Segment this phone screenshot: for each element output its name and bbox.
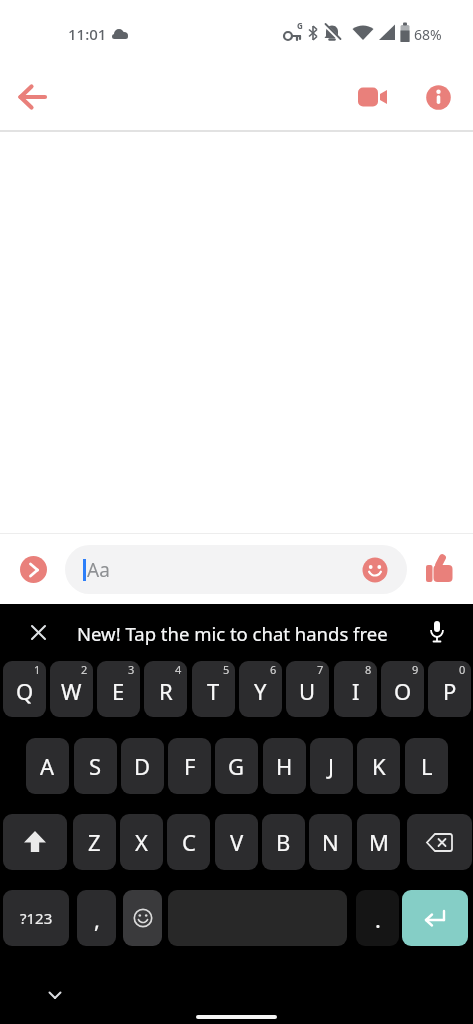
button[interactable]: H — [263, 738, 306, 794]
button[interactable]: V — [215, 814, 258, 870]
staticText: , — [94, 904, 100, 934]
staticText: Y — [254, 676, 267, 706]
button[interactable] — [20, 614, 56, 650]
staticText: . — [375, 904, 381, 934]
staticText: 0 — [459, 662, 466, 677]
staticText: New! Tap the mic to chat hands free — [77, 621, 388, 646]
staticText: 5 — [223, 662, 230, 677]
staticText: 1 — [34, 662, 41, 677]
staticText: Q — [16, 676, 34, 706]
staticText: O — [394, 676, 412, 706]
button[interactable]: Y — [239, 661, 282, 717]
button[interactable]: G — [215, 738, 258, 794]
staticText: 7 — [317, 662, 324, 677]
button[interactable]: I — [334, 661, 377, 717]
button[interactable]: U — [286, 661, 329, 717]
staticText: P — [443, 676, 457, 706]
staticText: 2 — [81, 662, 88, 677]
staticText: X — [135, 827, 148, 857]
staticText: 68% — [414, 25, 442, 44]
staticText: N — [322, 827, 339, 857]
button[interactable] — [38, 978, 72, 1012]
button[interactable]: . — [356, 890, 399, 946]
staticText: U — [299, 676, 316, 706]
button[interactable]: E — [97, 661, 140, 717]
button[interactable]: , — [77, 890, 116, 946]
staticText: 8 — [365, 662, 372, 677]
button[interactable] — [419, 614, 455, 650]
button[interactable]: D — [121, 738, 164, 794]
staticText: 3 — [128, 662, 135, 677]
button[interactable] — [349, 73, 397, 121]
button[interactable] — [3, 814, 67, 870]
button[interactable]: P — [428, 661, 471, 717]
button[interactable]: S — [74, 738, 117, 794]
button[interactable] — [20, 556, 47, 583]
staticText: C — [182, 827, 196, 857]
button[interactable]: T — [192, 661, 235, 717]
staticText: G — [228, 751, 245, 781]
staticText: Z — [88, 827, 101, 857]
staticText: J — [328, 751, 335, 781]
button[interactable] — [424, 551, 457, 584]
button[interactable]: O — [381, 661, 424, 717]
staticText: Aa — [87, 557, 110, 583]
button[interactable] — [9, 73, 57, 121]
staticText: F — [184, 751, 196, 781]
staticText: I — [352, 676, 360, 706]
button[interactable]: C — [167, 814, 210, 870]
staticText: T — [207, 676, 220, 706]
staticText: E — [112, 676, 125, 706]
button[interactable] — [362, 557, 388, 583]
button[interactable]: N — [309, 814, 352, 870]
button[interactable]: ?123 — [3, 890, 69, 946]
button[interactable]: R — [144, 661, 187, 717]
button[interactable]: K — [357, 738, 400, 794]
button[interactable]: Q — [3, 661, 46, 717]
staticText: W — [61, 676, 82, 706]
button[interactable]: B — [262, 814, 305, 870]
staticText: K — [372, 751, 386, 781]
staticText: ?123 — [20, 908, 53, 928]
staticText: M — [369, 827, 389, 857]
staticText: H — [276, 751, 293, 781]
staticText: S — [89, 751, 102, 781]
button[interactable]: W — [50, 661, 93, 717]
button[interactable]: J — [310, 738, 353, 794]
button[interactable]: Z — [73, 814, 116, 870]
button[interactable] — [402, 890, 468, 946]
staticText: 11:01 — [68, 24, 107, 44]
button[interactable]: L — [405, 738, 448, 794]
button[interactable]: A — [26, 738, 69, 794]
staticText: A — [40, 751, 55, 781]
staticText: L — [421, 751, 433, 781]
button[interactable] — [407, 814, 472, 870]
button[interactable] — [123, 890, 162, 946]
staticText: B — [276, 827, 291, 857]
button[interactable]: F — [168, 738, 211, 794]
staticText: 6 — [270, 662, 277, 677]
staticText: V — [230, 827, 244, 857]
button[interactable] — [414, 73, 462, 121]
button[interactable] — [168, 890, 347, 946]
button[interactable]: X — [120, 814, 163, 870]
staticText: R — [159, 676, 173, 706]
staticText: G — [297, 20, 303, 31]
staticText: 9 — [412, 662, 419, 677]
button[interactable]: Aa — [65, 545, 407, 594]
button[interactable]: M — [357, 814, 400, 870]
staticText: 4 — [175, 662, 182, 677]
staticText: D — [134, 751, 151, 781]
